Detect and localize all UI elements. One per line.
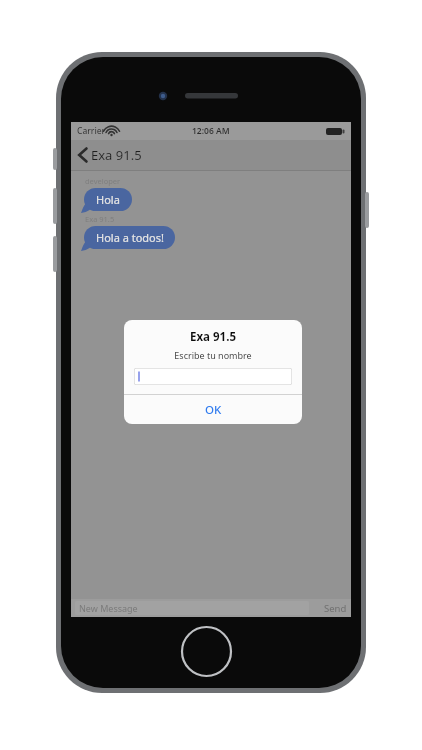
staticText: Carrier	[77, 125, 106, 137]
button[interactable]: New Message	[75, 601, 309, 615]
other: Back	[78, 147, 88, 163]
button[interactable]	[134, 368, 292, 385]
staticText: Exa 91.5	[85, 214, 115, 224]
button[interactable]: Back	[78, 146, 142, 164]
staticText: Send	[324, 602, 347, 615]
button[interactable]: OK	[124, 395, 302, 424]
staticText: 12:06 AM	[192, 125, 230, 137]
button[interactable]: Send	[324, 602, 347, 615]
staticText: Escribe tu nombre	[174, 349, 252, 361]
button[interactable]: Back	[71, 140, 351, 170]
staticText: Hola	[96, 192, 120, 207]
staticText: Exa 91.5	[190, 329, 236, 345]
staticText: Hola a todos!	[96, 230, 164, 245]
staticText: developer	[85, 176, 121, 186]
button[interactable]: Hola	[81, 188, 129, 211]
staticText: OK	[205, 402, 222, 418]
button[interactable]: Hola a todos!	[81, 226, 172, 249]
staticText: Exa 91.5	[91, 146, 142, 164]
staticText: New Message	[79, 602, 138, 614]
